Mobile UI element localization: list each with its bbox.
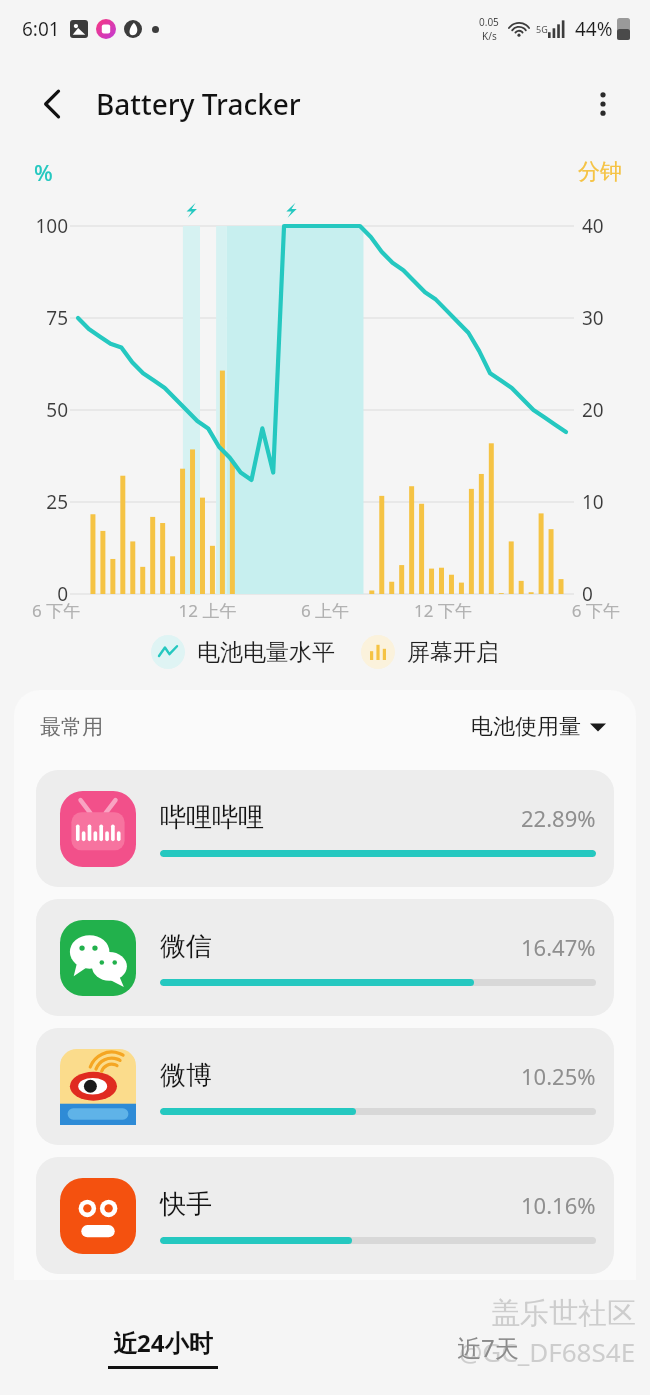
staticText: 微博 [160,1059,212,1092]
staticText: 6:01 [22,16,60,42]
staticText: 0 [582,581,628,607]
staticText: 10.25% [521,1061,596,1091]
staticText: 最常用 [40,714,103,740]
staticText: 25 [20,489,68,515]
button[interactable]: 近7天 [325,1299,650,1395]
staticText: 6 上午 [266,599,384,622]
staticText: 哔哩哔哩 [160,801,264,834]
button[interactable]: 近24小时 [0,1299,325,1395]
staticText: 12 上午 [149,599,266,622]
staticText: 16.47% [521,932,596,962]
button[interactable]: 微信 [36,899,614,1016]
button[interactable]: 微博 [36,1028,614,1145]
staticText: 22.89% [521,803,596,833]
staticText: 5G [536,23,548,35]
staticText: 分钟 [578,158,622,186]
staticText: 50 [20,397,68,423]
staticText: 6 下午 [32,599,149,622]
staticText: 微信 [160,930,212,963]
staticText: 快手 [160,1188,212,1221]
staticText: 12 下午 [384,599,502,622]
staticText: K/s [482,29,497,43]
staticText: 近7天 [457,1331,519,1364]
staticText: 44% [575,16,613,42]
staticText: 6 下午 [502,599,620,622]
staticText: 近24小时 [113,1326,213,1359]
staticText: 75 [20,305,68,331]
staticText: 40 [582,213,628,239]
staticText: 30 [582,305,628,331]
staticText: 电池电量水平 [197,638,335,667]
staticText: 0.05 [479,15,499,29]
staticText: 盖乐世社区 [491,1295,636,1332]
staticText: Battery Tracker [96,85,301,123]
staticText: 0 [20,581,68,607]
staticText: % [34,157,53,187]
button[interactable]: 电池使用量 [467,709,610,745]
staticText: 电池使用量 [471,713,581,741]
staticText: 10 [582,489,628,515]
staticText: 10.16% [521,1190,596,1220]
button[interactable]: More options [580,81,626,127]
staticText: 100 [20,213,68,239]
staticText: 屏幕开启 [407,638,499,667]
button[interactable]: Back [30,81,76,127]
button[interactable]: 哔哩哔哩 [36,770,614,887]
staticText: @GC_DF68S4E [459,1334,636,1369]
staticText: 20 [582,397,628,423]
button[interactable]: 快手 [36,1157,614,1274]
